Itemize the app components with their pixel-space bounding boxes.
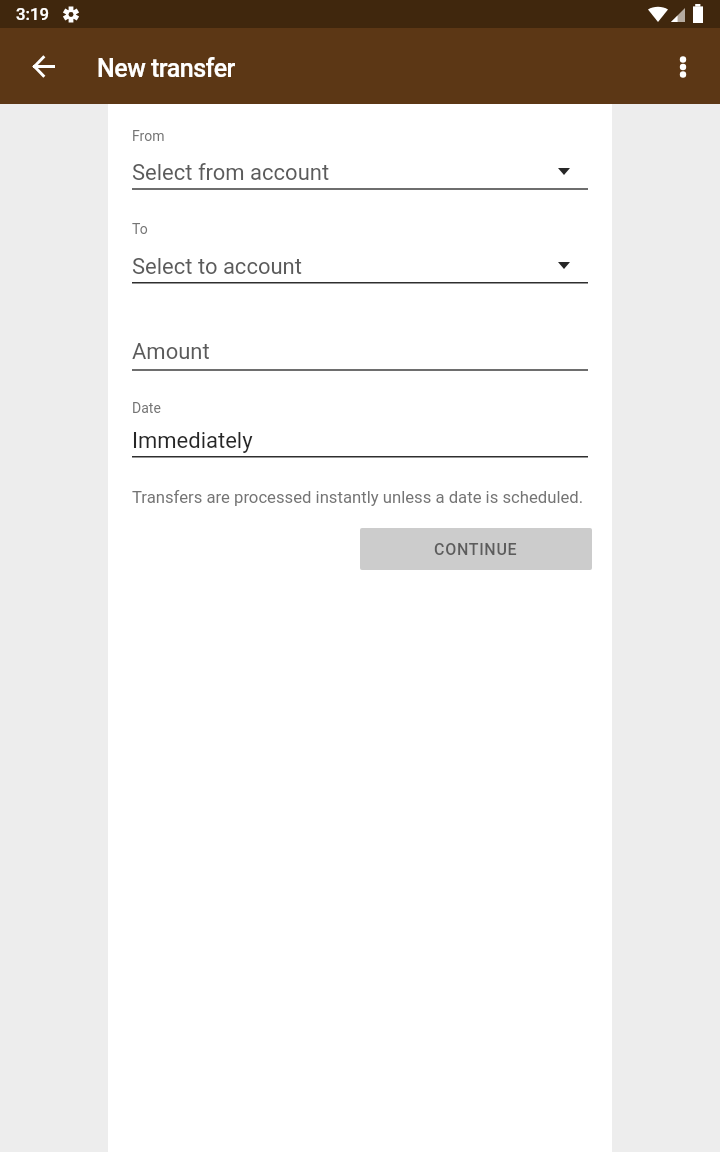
other: Wi-Fi <box>648 6 668 22</box>
button[interactable]: CONTINUE <box>360 528 592 570</box>
staticText: From <box>132 128 165 144</box>
button[interactable] <box>132 122 588 196</box>
button[interactable] <box>132 215 588 290</box>
staticText: To <box>132 221 148 237</box>
other: Mobile signal <box>671 8 685 22</box>
staticText: Transfers are processed instantly unless… <box>132 488 584 508</box>
button[interactable] <box>132 394 588 464</box>
other: Battery <box>693 4 703 23</box>
other: Settings <box>63 6 79 23</box>
staticText: Immediately <box>132 428 253 454</box>
staticText: Select to account <box>132 254 302 280</box>
button[interactable]: More options <box>657 40 709 92</box>
staticText: New transfer <box>97 54 235 83</box>
staticText: Select from account <box>132 160 330 186</box>
staticText: Amount <box>132 339 210 365</box>
staticText: Date <box>132 400 161 416</box>
button[interactable]: Navigate up <box>18 40 70 92</box>
button[interactable] <box>132 330 588 377</box>
staticText: 3:19 <box>16 4 50 24</box>
staticText: CONTINUE <box>434 540 518 559</box>
